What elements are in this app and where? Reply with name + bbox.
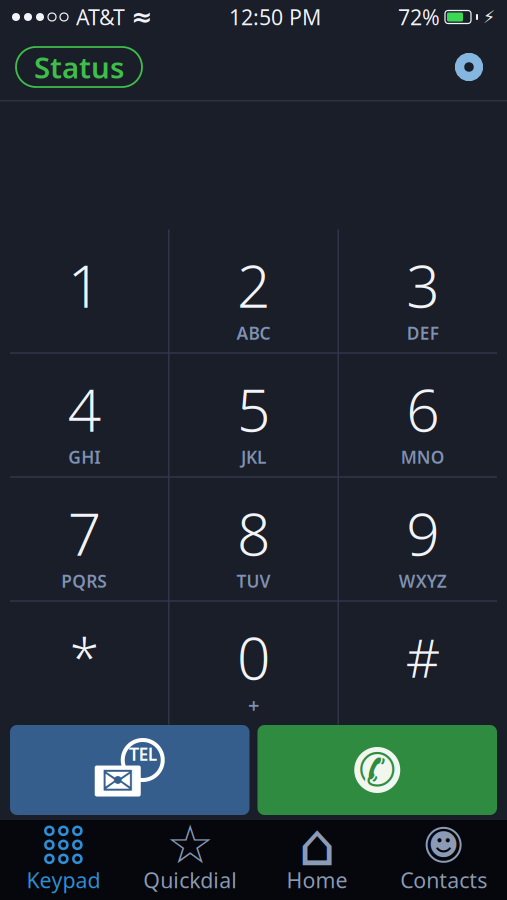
- button[interactable]: 7: [0, 477, 168, 600]
- button[interactable]: 3: [339, 229, 507, 352]
- staticText: 9: [406, 494, 439, 572]
- button[interactable]: 9: [339, 477, 507, 600]
- staticText: *: [70, 622, 99, 692]
- staticText: TUV: [236, 569, 270, 592]
- staticText: ABC: [236, 321, 270, 344]
- staticText: Status: [34, 47, 124, 86]
- button[interactable]: 4: [0, 353, 168, 476]
- staticText: 0: [237, 618, 270, 696]
- staticText: JKL: [241, 445, 266, 468]
- staticText: ⚡︎: [483, 7, 495, 27]
- staticText: ≈: [131, 3, 152, 31]
- button[interactable]: *: [0, 601, 168, 724]
- staticText: 2: [237, 246, 270, 324]
- staticText: 1: [68, 246, 101, 324]
- staticText: 4: [68, 370, 101, 448]
- staticText: 8: [237, 494, 270, 572]
- button[interactable]: 6: [339, 353, 507, 476]
- button[interactable]: Keypad: [0, 820, 127, 900]
- staticText: +: [248, 692, 259, 718]
- staticText: 72%: [398, 3, 440, 31]
- button[interactable]: Status: [16, 47, 142, 87]
- staticText: 6: [406, 370, 439, 448]
- button[interactable]: Settings: [447, 45, 491, 89]
- button[interactable]: 0: [169, 601, 338, 724]
- button[interactable]: Call: [257, 725, 497, 815]
- button[interactable]: ☆: [127, 820, 254, 900]
- staticText: 12:50 PM: [229, 3, 321, 31]
- staticText: Quickdial: [143, 866, 237, 894]
- staticText: ℡: [128, 735, 157, 785]
- staticText: ☻: [428, 828, 459, 861]
- button[interactable]: ⌂: [253, 820, 380, 900]
- button[interactable]: Send message: [10, 725, 249, 815]
- staticText: 3: [406, 246, 439, 324]
- staticText: AT&T: [76, 3, 125, 31]
- staticText: ☆: [166, 815, 214, 875]
- button[interactable]: 8: [169, 477, 338, 600]
- staticText: Home: [286, 866, 347, 894]
- staticText: 7: [68, 494, 101, 572]
- staticText: DEF: [407, 321, 439, 344]
- staticText: MNO: [401, 445, 445, 468]
- button[interactable]: #: [339, 601, 507, 724]
- staticText: Contacts: [400, 866, 487, 894]
- staticText: WXYZ: [399, 569, 447, 592]
- staticText: ⌂: [298, 811, 335, 878]
- staticText: 5: [237, 370, 270, 448]
- staticText: GHI: [68, 445, 100, 468]
- staticText: PQRS: [61, 569, 107, 592]
- staticText: #: [406, 622, 440, 692]
- button[interactable]: ☻: [380, 820, 507, 900]
- button[interactable]: 5: [169, 353, 338, 476]
- staticText: Keypad: [26, 866, 100, 894]
- staticText: ✉: [101, 758, 135, 804]
- button[interactable]: 1: [0, 229, 168, 352]
- staticText: ✆: [358, 744, 396, 796]
- button[interactable]: 2: [169, 229, 338, 352]
